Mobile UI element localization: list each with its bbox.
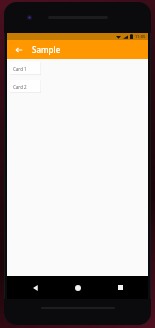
staticText: Card 2 — [13, 84, 27, 90]
button[interactable]: Card 2 — [10, 80, 41, 93]
button[interactable]: Recent apps — [105, 276, 135, 299]
button[interactable]: Card 1 — [10, 62, 41, 75]
staticText: Sample — [32, 44, 61, 55]
staticText: 11:05 — [135, 34, 146, 39]
staticText: Card 1 — [13, 66, 27, 72]
button[interactable]: Navigate up — [12, 43, 25, 56]
button[interactable]: Back — [20, 276, 50, 299]
button[interactable]: Home — [63, 276, 93, 299]
